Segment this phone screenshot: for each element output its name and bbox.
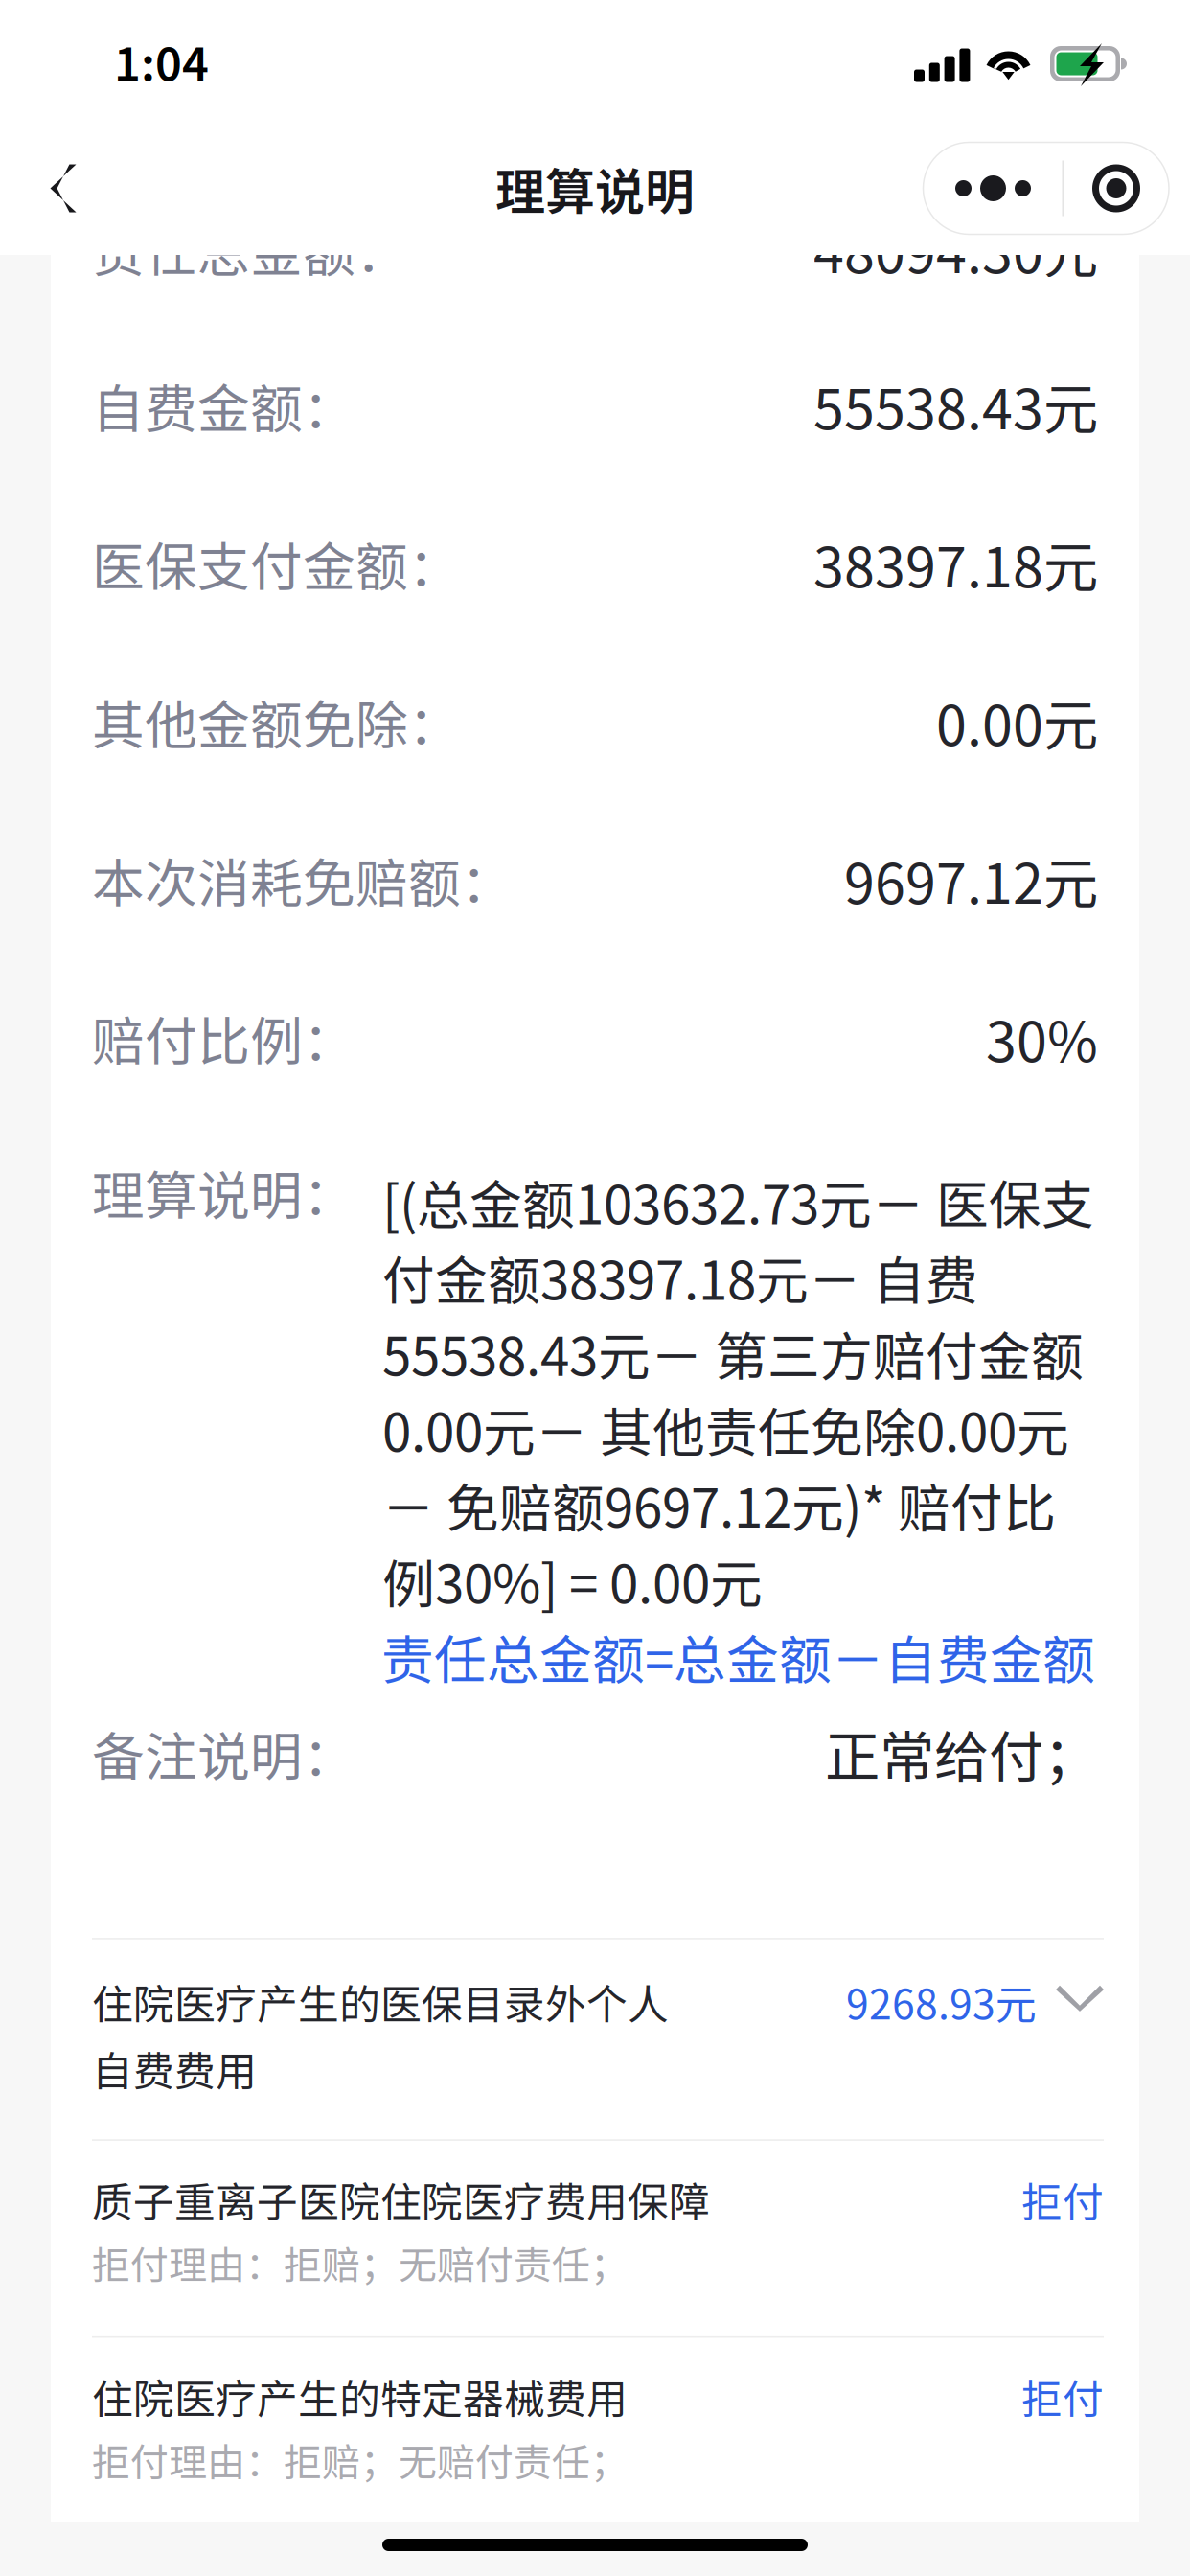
staticText: 住院医疗产生的医保目录外个人自费费用 [92, 1972, 669, 2098]
staticText: 住院医疗产生的特定器械费用 [92, 2367, 628, 2426]
staticText: 9697.12元 [844, 840, 1098, 920]
staticText: 质子重离子医院住院医疗费用保障 [92, 2170, 710, 2229]
staticText: 0.00元 [936, 682, 1098, 761]
staticText: [(总金额103632.73元－ 医保支付金额38397.18元－ 自费5553… [382, 1163, 1094, 1619]
staticText: 其他金额免除： [92, 684, 461, 760]
staticText: 拒付理由：拒赔；无赔付责任； [92, 2235, 629, 2290]
staticText: 责任总金额： [92, 211, 408, 287]
staticText: 理算说明 [495, 152, 695, 224]
staticText: 赔付比例： [92, 1000, 355, 1076]
staticText: 理算说明： [92, 1154, 355, 1230]
staticText: 55538.43元 [813, 366, 1098, 445]
staticText: 38397.18元 [813, 524, 1098, 603]
button[interactable]: 住院医疗产生的特定器械费用 [92, 2338, 1104, 2533]
staticText: 备注说明： [92, 1715, 355, 1791]
staticText: 48094.30元 [813, 209, 1098, 289]
button[interactable]: Back [0, 140, 111, 236]
staticText: 自费金额： [92, 367, 355, 443]
staticText: 拒付 [1021, 2367, 1104, 2426]
staticText: 本次消耗免赔额： [92, 842, 514, 918]
staticText: 30% [986, 998, 1098, 1078]
button[interactable]: 住院医疗产生的医保目录外个人自费费用 [92, 1939, 1104, 2139]
staticText: 9268.93元 [846, 1972, 1037, 2031]
staticText: 拒付理由：拒赔；无赔付责任； [92, 2432, 629, 2487]
button[interactable]: Close mini program [1064, 142, 1169, 234]
staticText: 拒付 [1021, 2170, 1104, 2229]
button[interactable]: More [923, 142, 1062, 234]
staticText: 医保支付金额： [92, 526, 461, 601]
staticText: 责任总金额=总金额－自费金额 [381, 1619, 1095, 1694]
staticText: 正常给付； [825, 1713, 1098, 1793]
staticText: 1:04 [114, 28, 209, 94]
button[interactable]: 质子重离子医院住院医疗费用保障 [92, 2141, 1104, 2336]
